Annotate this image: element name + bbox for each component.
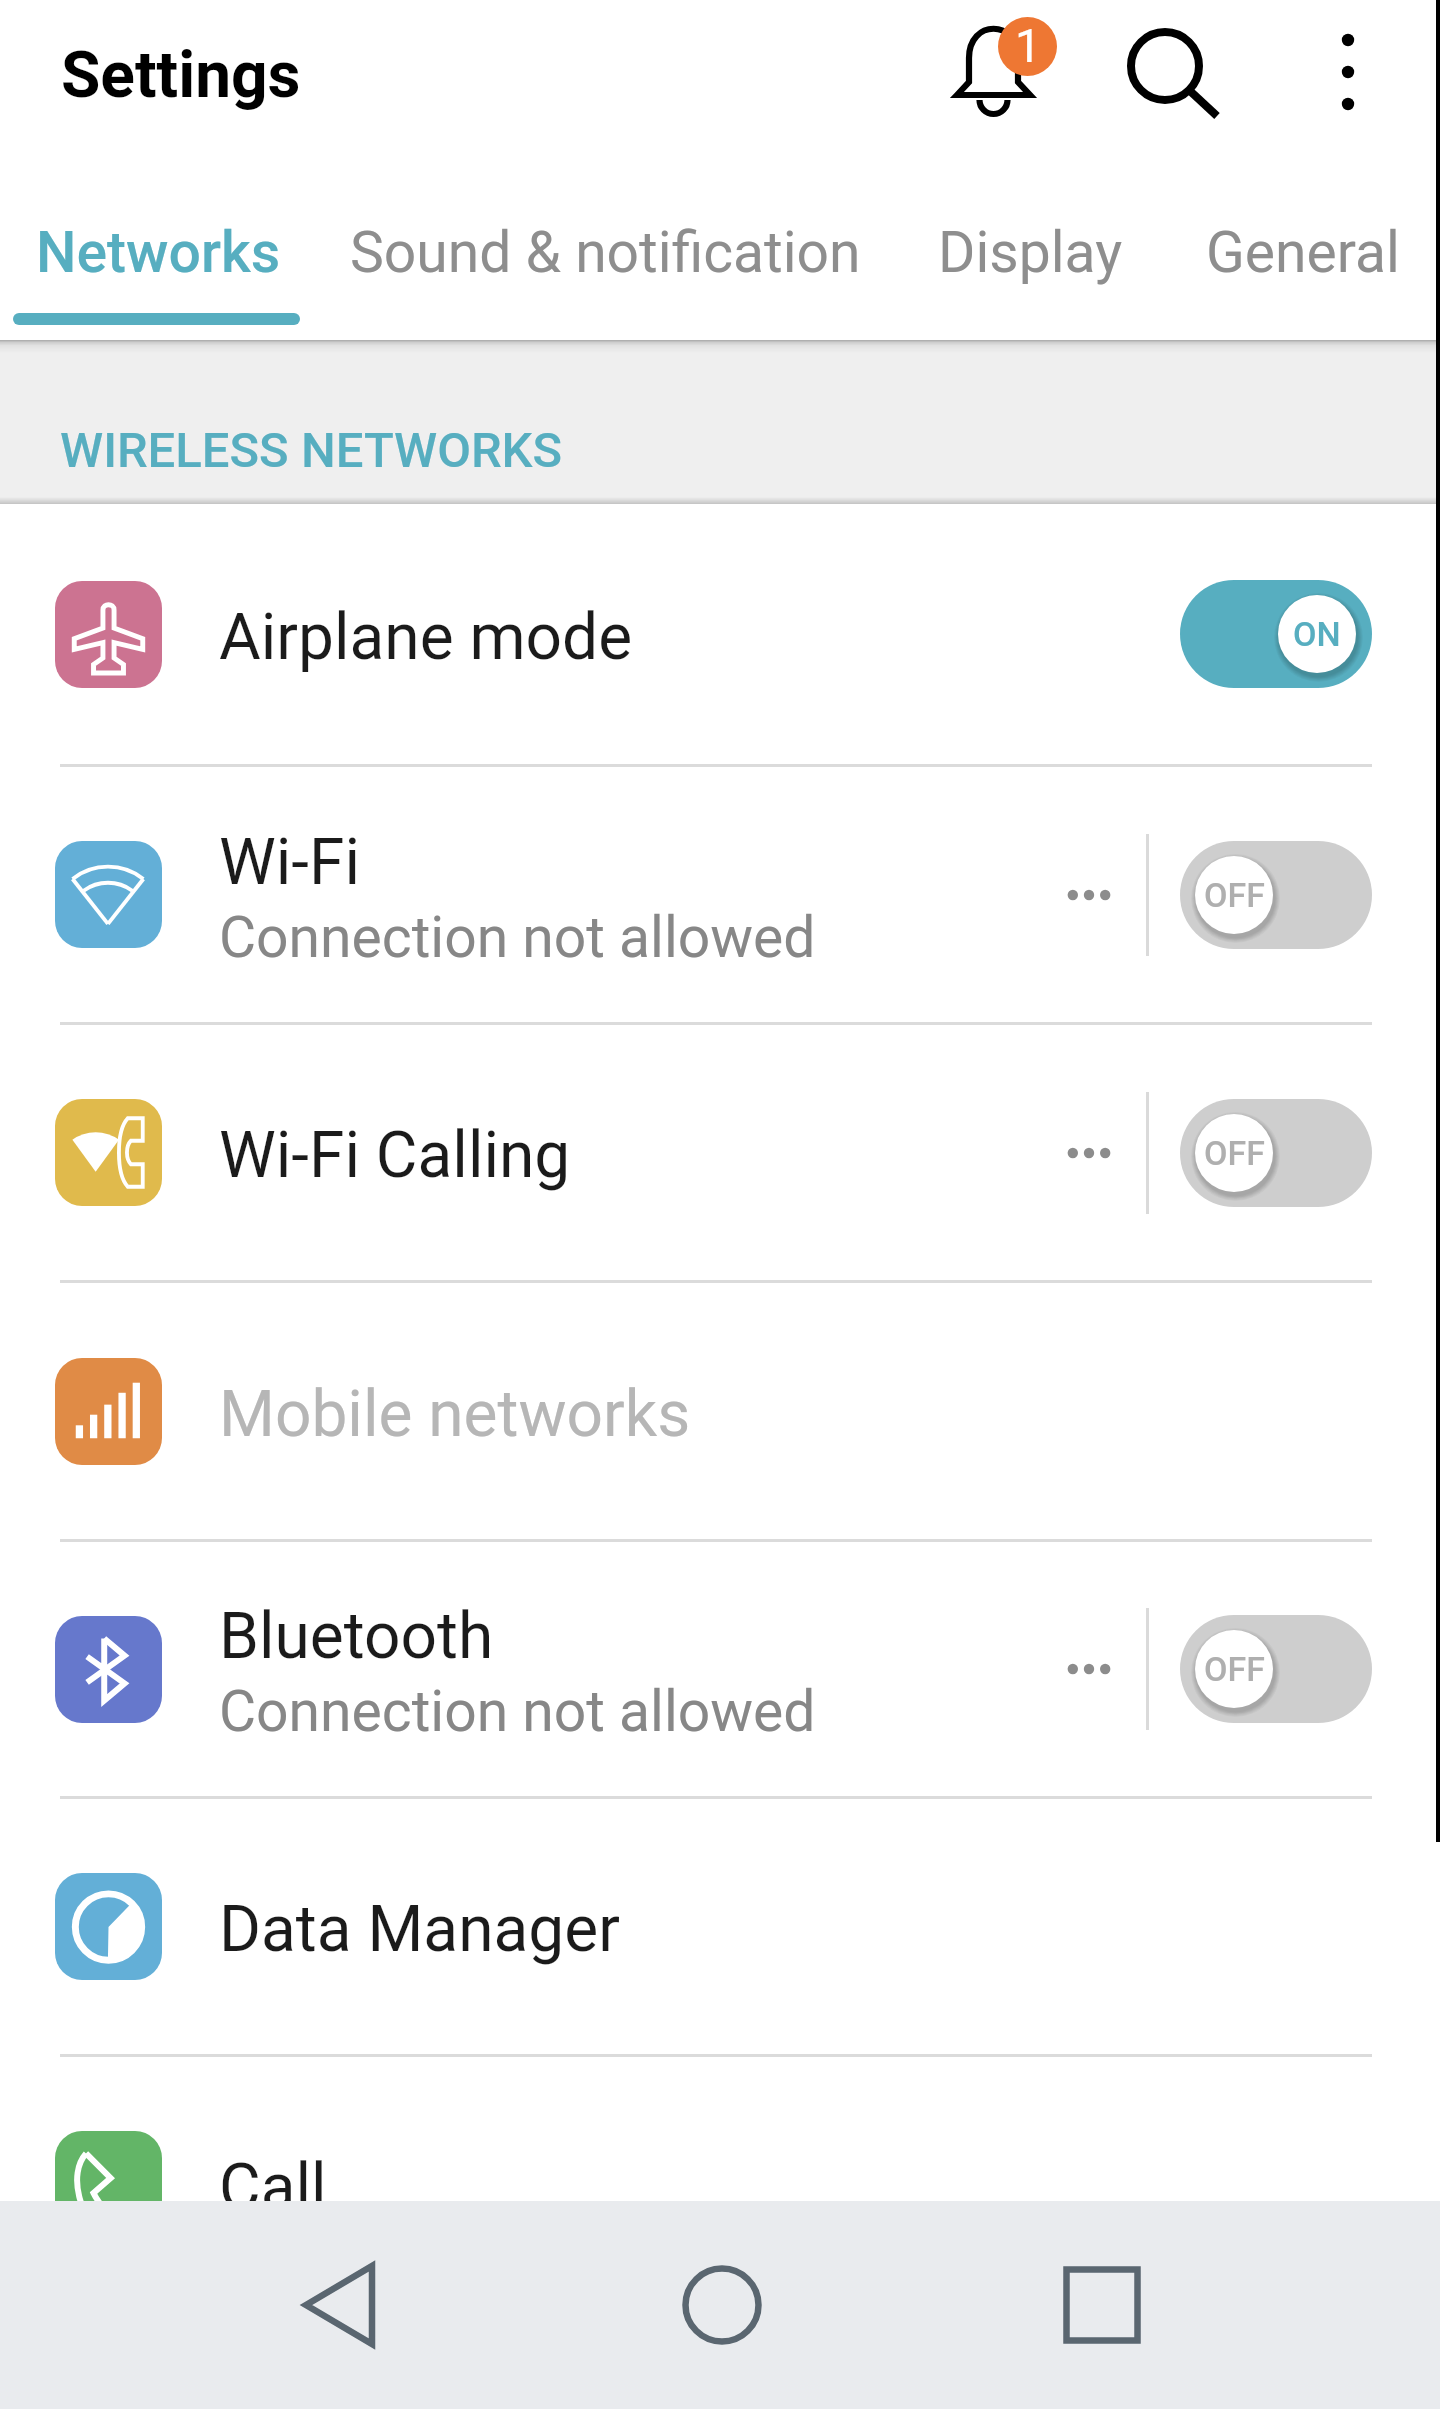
staticText: Mobile networks	[219, 1377, 691, 1452]
staticText: Sound & notification	[350, 219, 861, 286]
button[interactable]: Toggle off	[1180, 1099, 1372, 1207]
staticText: Wi-Fi	[219, 825, 360, 900]
button[interactable]: More	[1018, 1078, 1146, 1228]
button[interactable]: Networks	[0, 158, 317, 340]
staticText: Settings	[61, 38, 301, 113]
button[interactable]: Data Manager	[0, 1799, 1440, 2054]
button[interactable]: More options	[1288, 0, 1408, 158]
button[interactable]: Display	[894, 158, 1166, 340]
staticText: Connection not allowed	[219, 1678, 816, 1745]
button[interactable]: Sound & notification	[317, 158, 894, 340]
button[interactable]: Airplane mode	[0, 504, 1440, 764]
staticText: OFF	[1204, 1133, 1265, 1173]
button[interactable]: Recents	[1012, 2215, 1192, 2395]
staticText: Wi-Fi Calling	[219, 1118, 571, 1193]
button[interactable]: Back	[249, 2215, 429, 2395]
button[interactable]: Wi-Fi	[0, 767, 1440, 1022]
button[interactable]: General	[1166, 158, 1440, 340]
staticText: Display	[938, 219, 1123, 286]
button[interactable]: More	[1018, 820, 1146, 970]
staticText: Bluetooth	[219, 1599, 494, 1674]
button[interactable]: Home	[632, 2215, 812, 2395]
button[interactable]: Wi-Fi Calling	[0, 1025, 1440, 1280]
staticText: General	[1206, 219, 1400, 286]
staticText: ON	[1293, 614, 1341, 654]
staticText: OFF	[1204, 1649, 1265, 1689]
staticText: Call	[219, 2150, 327, 2201]
staticText: WIRELESS NETWORKS	[60, 422, 563, 479]
button[interactable]: More	[1018, 1594, 1146, 1744]
button[interactable]: Mobile networks	[0, 1283, 1440, 1539]
button[interactable]: Toggle off	[1180, 1615, 1372, 1723]
staticText: Networks	[36, 219, 281, 286]
button[interactable]: Bluetooth	[0, 1542, 1440, 1796]
button[interactable]: Toggle off	[1180, 841, 1372, 949]
staticText: Airplane mode	[219, 600, 633, 675]
button[interactable]: Toggle on	[1180, 580, 1372, 688]
button[interactable]: Search	[1100, 0, 1240, 158]
staticText: Connection not allowed	[219, 904, 816, 971]
staticText: 1	[1015, 19, 1041, 73]
staticText: OFF	[1204, 875, 1265, 915]
staticText: Data Manager	[219, 1892, 620, 1967]
button[interactable]: Notifications	[926, 0, 1066, 158]
button[interactable]: Call	[0, 2057, 1440, 2201]
